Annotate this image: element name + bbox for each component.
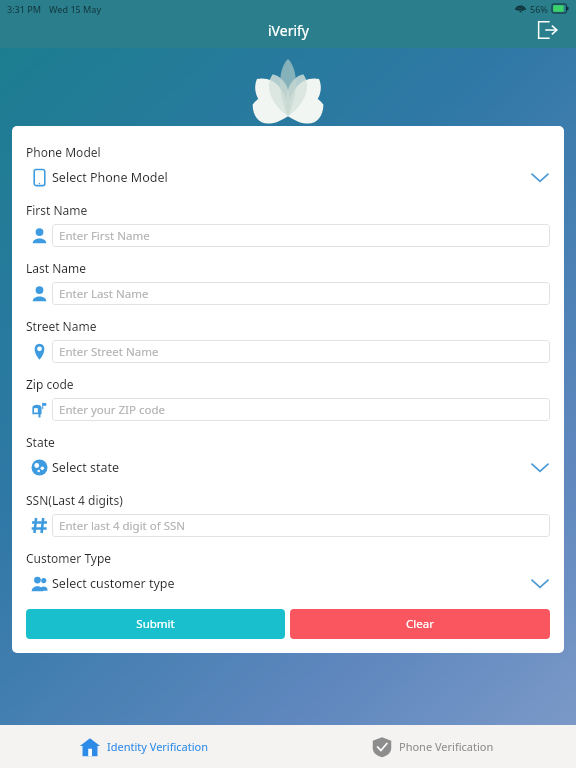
staticText: SSN(Last 4 digits) [26, 492, 123, 508]
staticText: Identity Verification [107, 739, 209, 754]
staticText: Enter Street Name [59, 344, 159, 360]
button[interactable]: Enter First Name [26, 223, 550, 247]
button[interactable]: Select Phone Model [26, 165, 550, 189]
staticText: Enter your ZIP code [59, 402, 166, 418]
staticText: Submit [136, 616, 175, 632]
staticText: Select state [52, 459, 120, 476]
button[interactable]: Enter your ZIP code [26, 397, 550, 421]
staticText: Customer Type [26, 550, 112, 566]
button[interactable]: Clear [290, 609, 550, 639]
button[interactable]: Phone Verification [288, 725, 576, 768]
button[interactable]: Submit [26, 609, 285, 639]
button[interactable]: Logout [532, 15, 562, 45]
staticText: Enter last 4 digit of SSN [59, 518, 186, 534]
button[interactable]: Select state [26, 455, 550, 479]
button[interactable]: Identity Verification [0, 725, 288, 768]
staticText: Last Name [26, 260, 87, 276]
staticText: Select customer type [52, 575, 175, 592]
button[interactable]: Enter last 4 digit of SSN [26, 513, 550, 537]
staticText: Zip code [26, 376, 74, 392]
staticText: First Name [26, 202, 88, 218]
staticText: State [26, 434, 55, 450]
button[interactable]: Enter Last Name [26, 281, 550, 305]
staticText: 56% [530, 3, 548, 15]
staticText: iVerify [268, 21, 309, 40]
button[interactable]: Select customer type [26, 571, 550, 595]
staticText: Enter Last Name [59, 286, 149, 302]
staticText: Street Name [26, 318, 97, 334]
staticText: Phone Model [26, 144, 101, 160]
staticText: Wed 15 May [49, 3, 102, 15]
staticText: Select Phone Model [52, 169, 168, 186]
staticText: Phone Verification [399, 739, 494, 754]
button[interactable]: Enter Street Name [26, 339, 550, 363]
staticText: 3:31 PM [7, 3, 41, 15]
staticText: Clear [406, 616, 434, 632]
staticText: Enter First Name [59, 228, 150, 244]
